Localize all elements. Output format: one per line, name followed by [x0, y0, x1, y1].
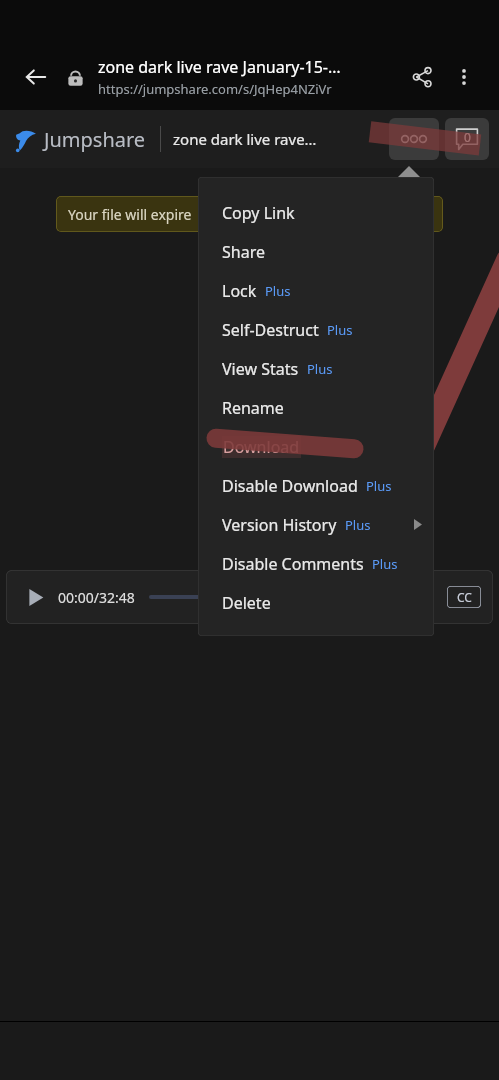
- staticText: Plus: [265, 282, 291, 300]
- staticText: Plus: [327, 321, 353, 339]
- staticText: Share: [222, 241, 265, 263]
- button[interactable]: Disable Comments: [198, 544, 434, 583]
- staticText: Lock: [222, 280, 257, 302]
- button[interactable]: Disable Download: [198, 466, 434, 505]
- staticText: https://jumpshare.com/s/JqHep4NZiVr: [98, 80, 332, 98]
- button[interactable]: Delete: [198, 583, 434, 622]
- staticText: Download: [223, 436, 300, 458]
- staticText: zone dark live rave…: [173, 129, 389, 149]
- button[interactable]: View Stats: [198, 349, 434, 388]
- staticText: Copy Link: [222, 202, 295, 224]
- button[interactable]: Play: [18, 580, 52, 614]
- button[interactable]: Lock: [198, 271, 434, 310]
- staticText: CC: [457, 589, 472, 605]
- staticText: 0: [464, 129, 471, 145]
- button[interactable]: Download: [198, 427, 434, 466]
- staticText: Disable Comments: [222, 553, 364, 575]
- button[interactable]: Copy Link: [198, 193, 434, 232]
- button[interactable]: Closed captions: [447, 586, 481, 608]
- button[interactable]: Share: [401, 56, 443, 98]
- staticText: Jumpshare: [44, 126, 146, 153]
- staticText: View Stats: [222, 358, 299, 380]
- staticText: Plus: [366, 477, 392, 495]
- button[interactable]: Version History: [198, 505, 434, 544]
- staticText: Plus: [307, 360, 333, 378]
- staticText: Self-Destruct: [222, 319, 319, 341]
- staticText: Version History: [222, 514, 337, 536]
- staticText: Plus: [345, 516, 371, 534]
- button[interactable]: Back: [14, 55, 58, 99]
- staticText: Disable Download: [222, 475, 358, 497]
- button[interactable]: File options menu: [389, 118, 439, 160]
- staticText: zone dark live rave January-15-…: [98, 56, 341, 78]
- staticText: Your file will expire: [68, 205, 192, 224]
- button[interactable]: Comments, 0: [445, 118, 489, 160]
- button[interactable]: zone dark live rave January-15-…: [98, 56, 401, 98]
- staticText: Plus: [372, 555, 398, 573]
- staticText: Rename: [222, 397, 284, 419]
- button[interactable]: Your file will expire: [56, 196, 443, 232]
- button[interactable]: Seek bar: [149, 595, 405, 599]
- staticText: 00:00/32:48: [58, 588, 135, 607]
- button[interactable]: Rename: [198, 388, 434, 427]
- button[interactable]: Self-Destruct: [198, 310, 434, 349]
- button[interactable]: Share: [198, 232, 434, 271]
- button[interactable]: Site security info: [58, 60, 92, 94]
- button[interactable]: More options: [443, 56, 485, 98]
- staticText: Delete: [222, 592, 271, 614]
- button[interactable]: Jumpshare: [12, 126, 148, 153]
